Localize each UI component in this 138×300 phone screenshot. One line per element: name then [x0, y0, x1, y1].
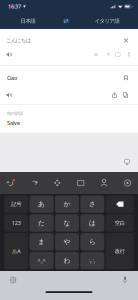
button[interactable]: Next keyboard: [4, 273, 22, 287]
button[interactable]: Play source audio: [3, 49, 16, 60]
button[interactable]: 改行: [106, 233, 134, 269]
staticText: ま: [38, 238, 45, 246]
staticText: か: [63, 200, 70, 208]
staticText: 、。: [88, 256, 96, 260]
button[interactable]: 日本語: [0, 13, 56, 28]
staticText: さ: [89, 200, 96, 208]
staticText: な: [63, 219, 70, 227]
staticText: 記号: [11, 201, 21, 207]
button[interactable]: Redo: [25, 176, 42, 189]
button[interactable]: Add to favorites: [120, 72, 132, 83]
staticText: 日本語: [20, 18, 35, 24]
button[interactable]: [106, 195, 134, 213]
staticText: た: [38, 219, 45, 227]
button[interactable]: 空白: [106, 214, 134, 232]
staticText: こんにちは: [6, 37, 31, 44]
button[interactable]: Contacts: [96, 176, 113, 189]
button[interactable]: Camera: [112, 49, 123, 60]
button[interactable]: Dictation: [116, 273, 134, 287]
button[interactable]: Share: [109, 89, 120, 100]
button[interactable]: わ: [55, 252, 79, 269]
staticText: ^_^: [38, 257, 46, 264]
staticText: あ: [38, 200, 45, 208]
button[interactable]: た: [30, 214, 54, 232]
button[interactable]: 記号: [4, 195, 28, 213]
button[interactable]: 、。: [80, 252, 104, 269]
staticText: ？！: [88, 260, 96, 265]
button[interactable]: Dictate: [123, 49, 134, 60]
button[interactable]: ら: [80, 233, 104, 250]
staticText: A: [17, 248, 20, 255]
staticText: 16:37: [8, 3, 21, 10]
button[interactable]: イタリア語: [76, 13, 138, 28]
button[interactable]: 123: [4, 214, 28, 232]
staticText: や: [63, 238, 70, 246]
staticText: は: [89, 219, 96, 227]
staticText: 123: [12, 219, 21, 226]
staticText: イタリア語: [94, 18, 119, 24]
button[interactable]: Delete: [90, 49, 101, 60]
staticText: 改行: [115, 248, 125, 254]
button[interactable]: ま: [30, 233, 54, 250]
button[interactable]: あ: [30, 195, 54, 213]
button[interactable]: Play translation audio: [3, 89, 16, 100]
button[interactable]: Swap languages: [56, 13, 76, 28]
button[interactable]: か: [55, 195, 79, 213]
button[interactable]: や: [55, 233, 79, 250]
button[interactable]: な: [55, 214, 79, 232]
staticText: ら: [89, 238, 96, 246]
staticText: Ciao: [7, 74, 17, 82]
button[interactable]: Copy: [120, 89, 131, 100]
button[interactable]: Replay: [101, 49, 112, 60]
staticText: Salve: [7, 119, 20, 126]
button[interactable]: Move cursor: [49, 176, 66, 189]
button[interactable]: Hide keyboard: [121, 157, 133, 168]
button[interactable]: Paste: [72, 176, 89, 189]
button[interactable]: さ: [80, 195, 104, 213]
button[interactable]: あ: [4, 233, 28, 269]
staticText: あ: [12, 248, 17, 254]
staticText: 空白: [115, 220, 125, 226]
button[interactable]: ^_^: [30, 252, 54, 269]
button[interactable]: Undo: [2, 176, 19, 189]
button[interactable]: Clear text: [120, 35, 132, 46]
button[interactable]: は: [80, 214, 104, 232]
button[interactable]: Keyboard settings: [119, 176, 136, 189]
staticText: わ: [63, 256, 70, 265]
staticText: 他の訳語: [7, 111, 23, 116]
